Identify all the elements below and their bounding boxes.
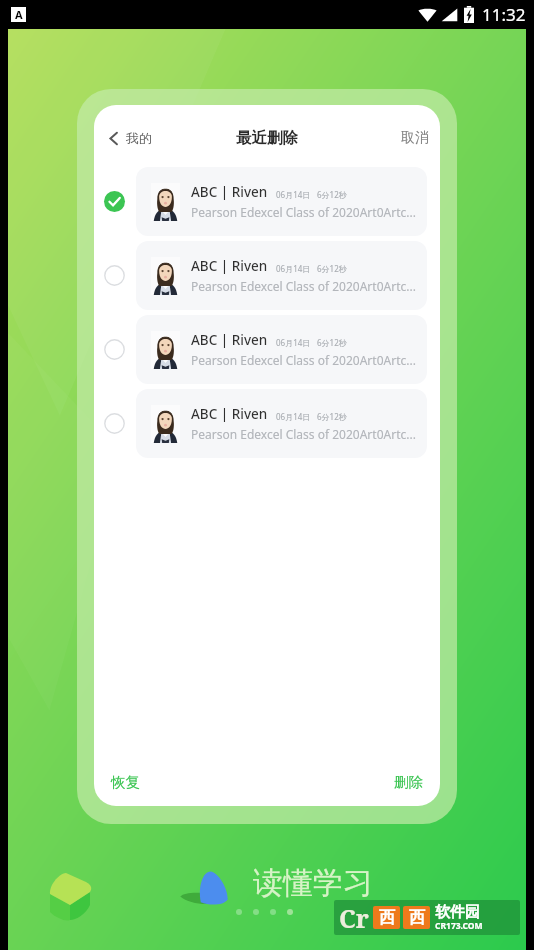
staticText: 读懂学习 xyxy=(253,864,373,902)
staticText: ABC | Riven xyxy=(191,331,268,349)
staticText: Pearson Edexcel Class of 2020Art0Artc... xyxy=(191,204,416,220)
staticText: 06月14日 xyxy=(276,263,311,274)
button[interactable]: 取消 xyxy=(389,121,440,155)
staticText: Pearson Edexcel Class of 2020Art0Artc... xyxy=(191,352,416,368)
staticText: 6分12秒 xyxy=(317,189,347,200)
button[interactable]: ABC | Riven xyxy=(94,241,440,310)
staticText: 恢复 xyxy=(111,773,140,791)
staticText: 软件园 xyxy=(435,903,480,922)
staticText: ABC | Riven xyxy=(191,183,268,201)
staticText: ABC | Riven xyxy=(191,405,268,423)
button[interactable]: ABC | Riven xyxy=(94,315,440,384)
button[interactable]: 恢复 xyxy=(94,763,154,801)
staticText: 西 xyxy=(409,908,425,928)
staticText: 06月14日 xyxy=(276,189,311,200)
staticText: Cr xyxy=(339,901,369,935)
staticText: 西 xyxy=(379,908,395,928)
staticText: 06月14日 xyxy=(276,411,311,422)
staticText: 6分12秒 xyxy=(317,337,347,348)
staticText: 6分12秒 xyxy=(317,263,347,274)
staticText: Pearson Edexcel Class of 2020Art0Artc... xyxy=(191,278,416,294)
button[interactable]: 我的 xyxy=(94,122,164,154)
staticText: 11:32 xyxy=(482,3,526,26)
staticText: 取消 xyxy=(401,129,429,147)
staticText: 06月14日 xyxy=(276,337,311,348)
button[interactable]: 删除 xyxy=(380,763,440,801)
staticText: CR173.COM xyxy=(435,920,483,932)
button[interactable]: ABC | Riven xyxy=(94,167,440,236)
staticText: 6分12秒 xyxy=(317,411,347,422)
button[interactable]: ABC | Riven xyxy=(94,389,440,458)
staticText: A xyxy=(15,7,23,22)
staticText: 删除 xyxy=(394,773,423,791)
staticText: Pearson Edexcel Class of 2020Art0Artc... xyxy=(191,426,416,442)
staticText: 最近删除 xyxy=(236,128,298,148)
staticText: ABC | Riven xyxy=(191,257,268,275)
staticText: 我的 xyxy=(126,130,152,146)
